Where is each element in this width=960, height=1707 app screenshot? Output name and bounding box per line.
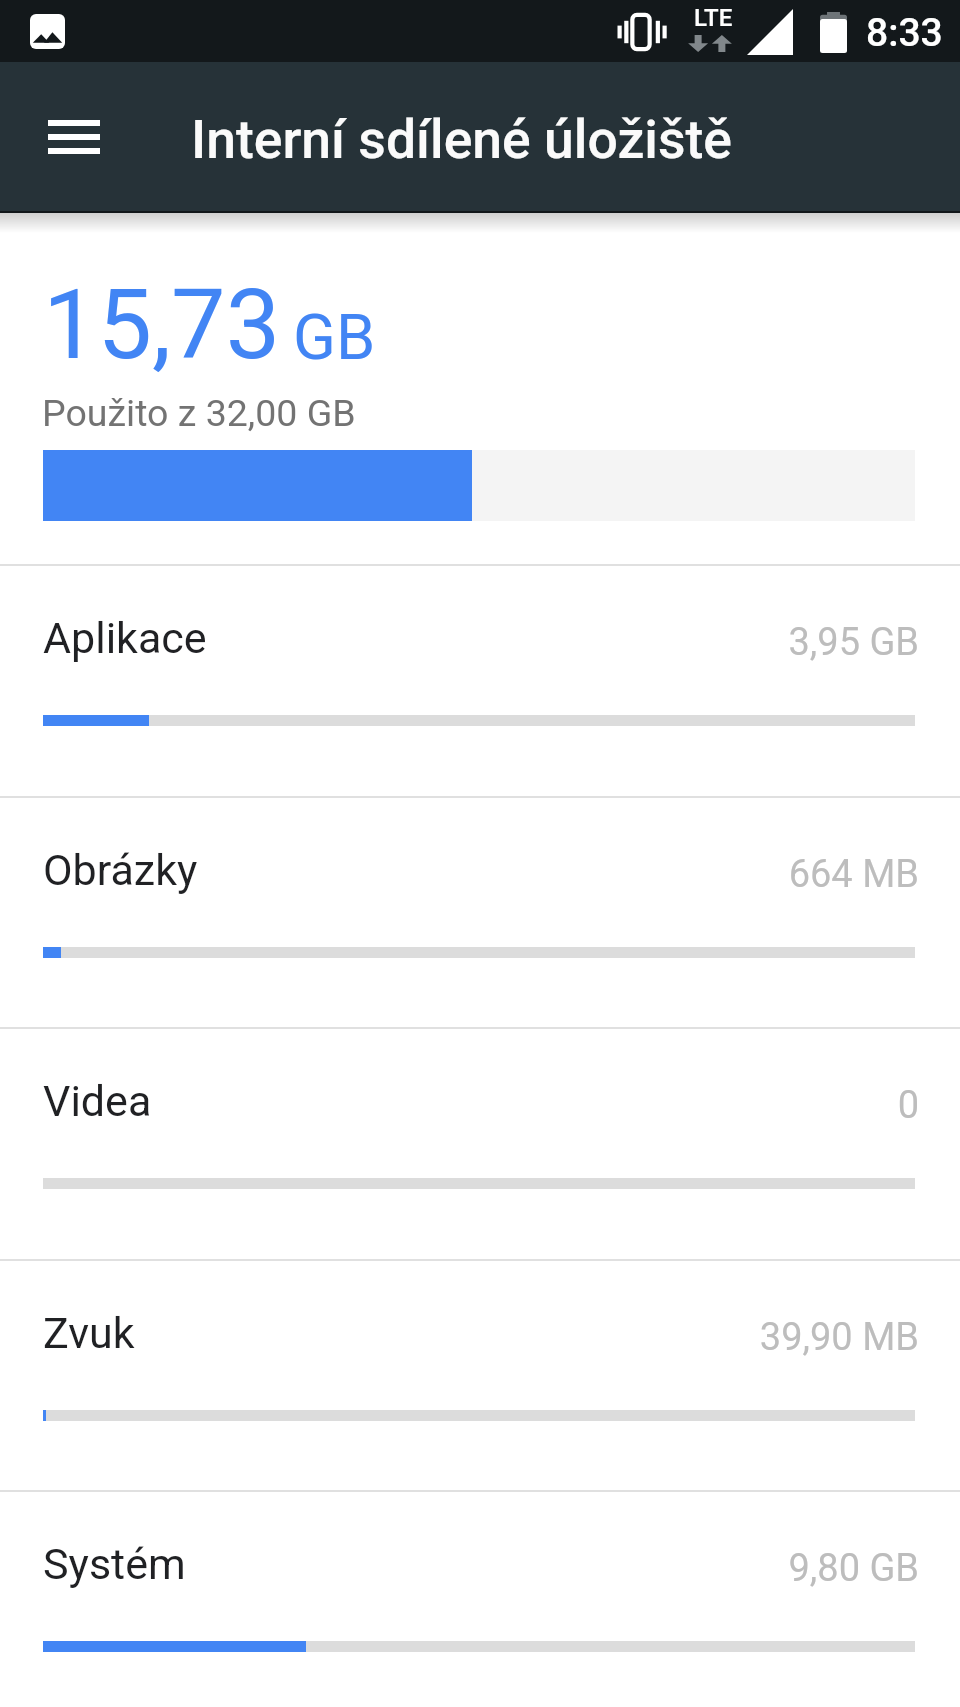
staticText: GB [293,301,376,375]
button[interactable]: Videa [0,1027,960,1259]
staticText: Zvuk [43,1308,135,1358]
staticText: 0 [897,1083,919,1128]
button[interactable]: Systém [0,1490,960,1707]
staticText: 664 MB [788,852,919,897]
staticText: Použito z 32,00 GB [42,391,356,435]
staticText: 15,73 [43,268,281,382]
staticText: LTE [694,4,733,32]
button[interactable]: Obrázky [0,796,960,1028]
staticText: Systém [43,1539,186,1589]
staticText: 39,90 MB [759,1315,919,1360]
staticText: Obrázky [43,845,198,895]
button[interactable]: Open navigation menu [26,89,122,185]
staticText: Videa [43,1076,152,1126]
staticText: 3,95 GB [788,620,919,665]
button[interactable]: Aplikace [0,564,960,796]
staticText: Interní sdílené úložiště [191,108,732,171]
staticText: 9,80 GB [788,1546,919,1591]
staticText: Aplikace [43,613,207,663]
staticText: 8:33 [866,10,943,56]
button[interactable]: Zvuk [0,1259,960,1491]
